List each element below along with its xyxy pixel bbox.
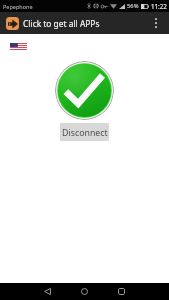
staticText: Pepephone [3, 3, 33, 10]
button[interactable]: Recent apps [113, 283, 130, 300]
button[interactable]: Language [10, 43, 27, 50]
staticText: Click to get all APPs [23, 18, 100, 29]
staticText: 11:22 [151, 2, 167, 10]
staticText: Disconnect [62, 127, 108, 139]
button[interactable]: Get all apps [6, 17, 19, 30]
button[interactable]: Home [76, 283, 93, 300]
button[interactable]: Disconnect [60, 123, 109, 141]
button[interactable]: Back [39, 283, 56, 300]
staticText: 56% [127, 2, 139, 10]
button[interactable]: More options [147, 12, 169, 34]
button[interactable]: Connection status: connected [55, 61, 114, 120]
